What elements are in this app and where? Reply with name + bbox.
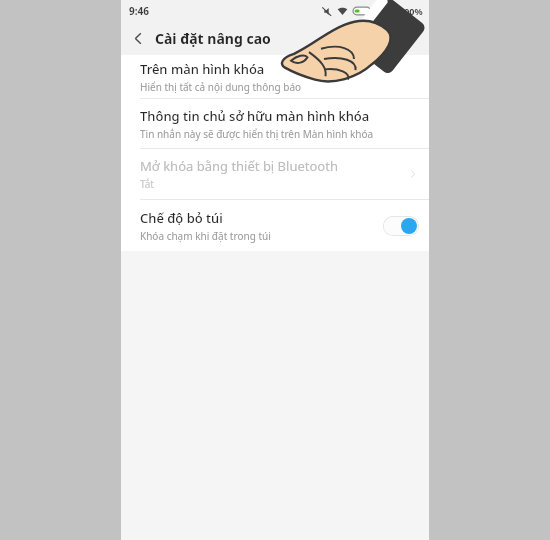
staticText: Mở khóa bằng thiết bị Bluetooth bbox=[140, 157, 338, 175]
staticText: 9:46 bbox=[129, 4, 149, 18]
button[interactable]: Chế độ bỏ túi bbox=[121, 200, 429, 251]
staticText: Thông tin chủ sở hữu màn hình khóa bbox=[140, 107, 370, 125]
staticText: Chế độ bỏ túi bbox=[140, 209, 223, 227]
button[interactable]: Thông tin chủ sở hữu màn hình khóa bbox=[121, 99, 429, 148]
staticText: Trên màn hình khóa bbox=[140, 60, 265, 78]
button[interactable]: Mở khóa bằng thiết bị Bluetooth bbox=[121, 149, 429, 199]
staticText: Tin nhắn này sẽ được hiển thị trên Màn h… bbox=[140, 127, 374, 141]
button[interactable]: Back bbox=[121, 22, 155, 55]
button[interactable]: Pocket mode toggle bbox=[383, 216, 419, 236]
staticText: Khóa chạm khi đặt trong túi bbox=[140, 229, 271, 243]
staticText: Cài đặt nâng cao bbox=[155, 29, 271, 48]
staticText: Tắt bbox=[140, 177, 154, 191]
staticText: Hiển thị tất cả nội dung thông báo bbox=[140, 80, 302, 94]
staticText: 100% bbox=[399, 5, 423, 17]
button[interactable]: Trên màn hình khóa bbox=[121, 55, 429, 98]
